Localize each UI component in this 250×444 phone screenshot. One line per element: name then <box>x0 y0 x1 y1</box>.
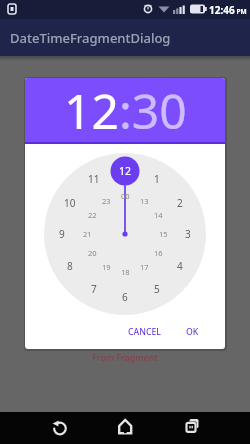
staticText: OK <box>186 326 199 338</box>
staticText: 14 <box>154 210 163 220</box>
staticText: 3 <box>185 227 191 241</box>
staticText: 12:30 <box>64 78 187 143</box>
button[interactable]: OK <box>25 78 55 98</box>
staticText: 5 <box>154 282 160 296</box>
staticText: 21 <box>83 229 92 239</box>
staticText: 1 <box>154 172 160 186</box>
staticText: 11 <box>88 172 100 186</box>
staticText: 19 <box>102 262 111 272</box>
staticText: 23 <box>102 196 111 206</box>
staticText: 16 <box>154 248 163 258</box>
staticText: 10 <box>64 196 76 210</box>
staticText: DateTimeFragmentDialog <box>10 29 171 47</box>
staticText: 00 <box>121 191 130 201</box>
staticText: 12 <box>119 164 132 178</box>
staticText: 15 <box>159 229 168 239</box>
staticText: 12:46 PM <box>209 3 247 17</box>
staticText: 8 <box>67 259 73 273</box>
staticText: 2 <box>177 196 183 210</box>
staticText: 20 <box>88 248 97 258</box>
staticText: 22 <box>88 210 97 220</box>
staticText: 4 <box>177 259 183 273</box>
staticText: 18 <box>121 267 130 277</box>
staticText: 6 <box>122 290 128 304</box>
button[interactable] <box>0 412 83 444</box>
button[interactable]: CANCEL <box>25 78 75 98</box>
button[interactable] <box>83 412 167 444</box>
button[interactable] <box>167 412 250 444</box>
staticText: 9 <box>59 227 65 241</box>
staticText: 7 <box>91 282 97 296</box>
staticText: CANCEL <box>128 326 161 338</box>
staticText: 17 <box>140 262 149 272</box>
staticText: From Fragment <box>92 351 158 363</box>
staticText: 13 <box>140 196 149 206</box>
